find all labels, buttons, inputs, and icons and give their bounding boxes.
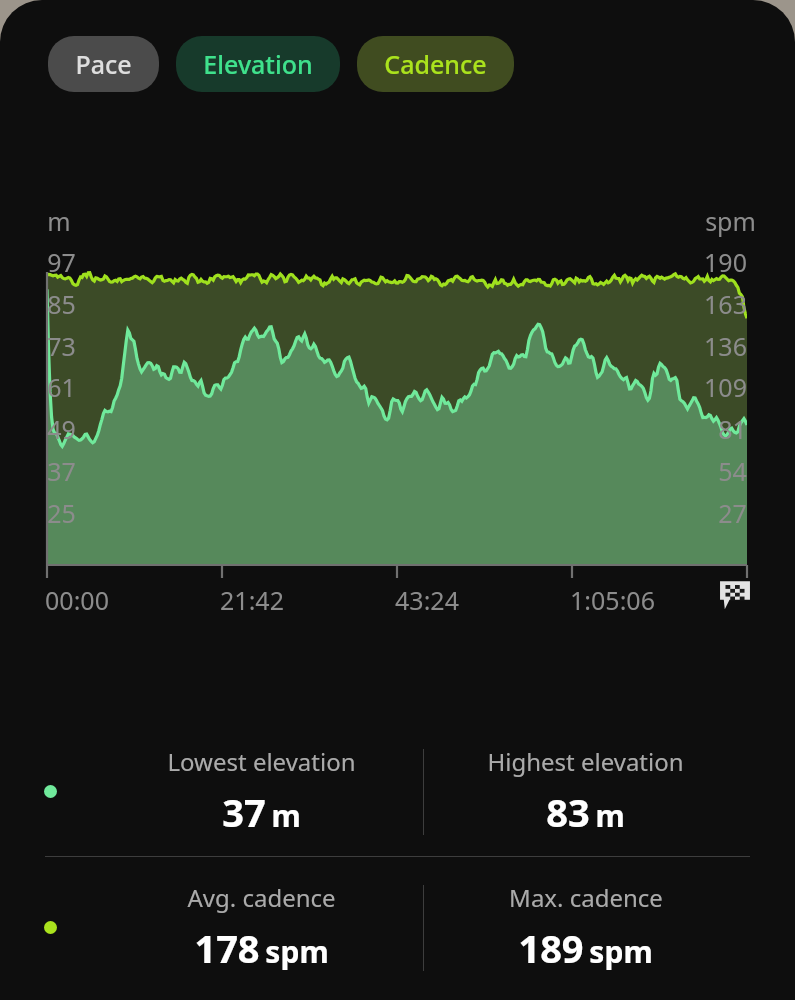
staticText: 54 [718, 454, 747, 488]
staticText: 00:00 [45, 583, 109, 617]
button[interactable]: Pace [48, 36, 159, 92]
other: Finish [718, 578, 752, 610]
staticText: 85 [47, 287, 76, 321]
staticText: 163 [704, 287, 747, 321]
staticText: 1:05:06 [570, 583, 655, 617]
staticText: 109 [704, 370, 747, 404]
button[interactable]: Elevation [176, 36, 340, 92]
staticText: m [47, 204, 71, 238]
staticText: 21:42 [220, 583, 284, 617]
staticText: 83 [546, 786, 590, 838]
button[interactable]: Lowest elevation [100, 745, 423, 838]
staticText: Avg. cadence [187, 881, 336, 914]
staticText: 189 [518, 922, 584, 974]
staticText: Highest elevation [487, 745, 684, 778]
staticText: spm [589, 931, 653, 972]
staticText: Max. cadence [509, 881, 663, 914]
staticText: 97 [47, 245, 76, 279]
staticText: 136 [704, 329, 747, 363]
staticText: 49 [47, 412, 76, 446]
button[interactable]: Max. cadence [424, 881, 747, 974]
button[interactable]: Avg. cadence [100, 881, 423, 974]
staticText: 178 [194, 922, 260, 974]
staticText: spm [705, 204, 756, 238]
staticText: spm [265, 931, 329, 972]
staticText: 43:24 [395, 583, 459, 617]
button[interactable]: Highest elevation [424, 745, 747, 838]
staticText: Lowest elevation [167, 745, 356, 778]
staticText: m [595, 795, 625, 836]
staticText: 37 [47, 454, 76, 488]
staticText: 27 [718, 496, 747, 530]
staticText: m [271, 795, 301, 836]
staticText: Elevation [203, 47, 313, 81]
staticText: 61 [47, 370, 76, 404]
staticText: Pace [75, 47, 132, 81]
staticText: 25 [47, 496, 76, 530]
staticText: 37 [222, 786, 266, 838]
staticText: 81 [718, 412, 747, 446]
staticText: 190 [704, 245, 747, 279]
staticText: Cadence [384, 47, 487, 81]
button[interactable]: Cadence [357, 36, 514, 92]
staticText: 73 [47, 329, 76, 363]
